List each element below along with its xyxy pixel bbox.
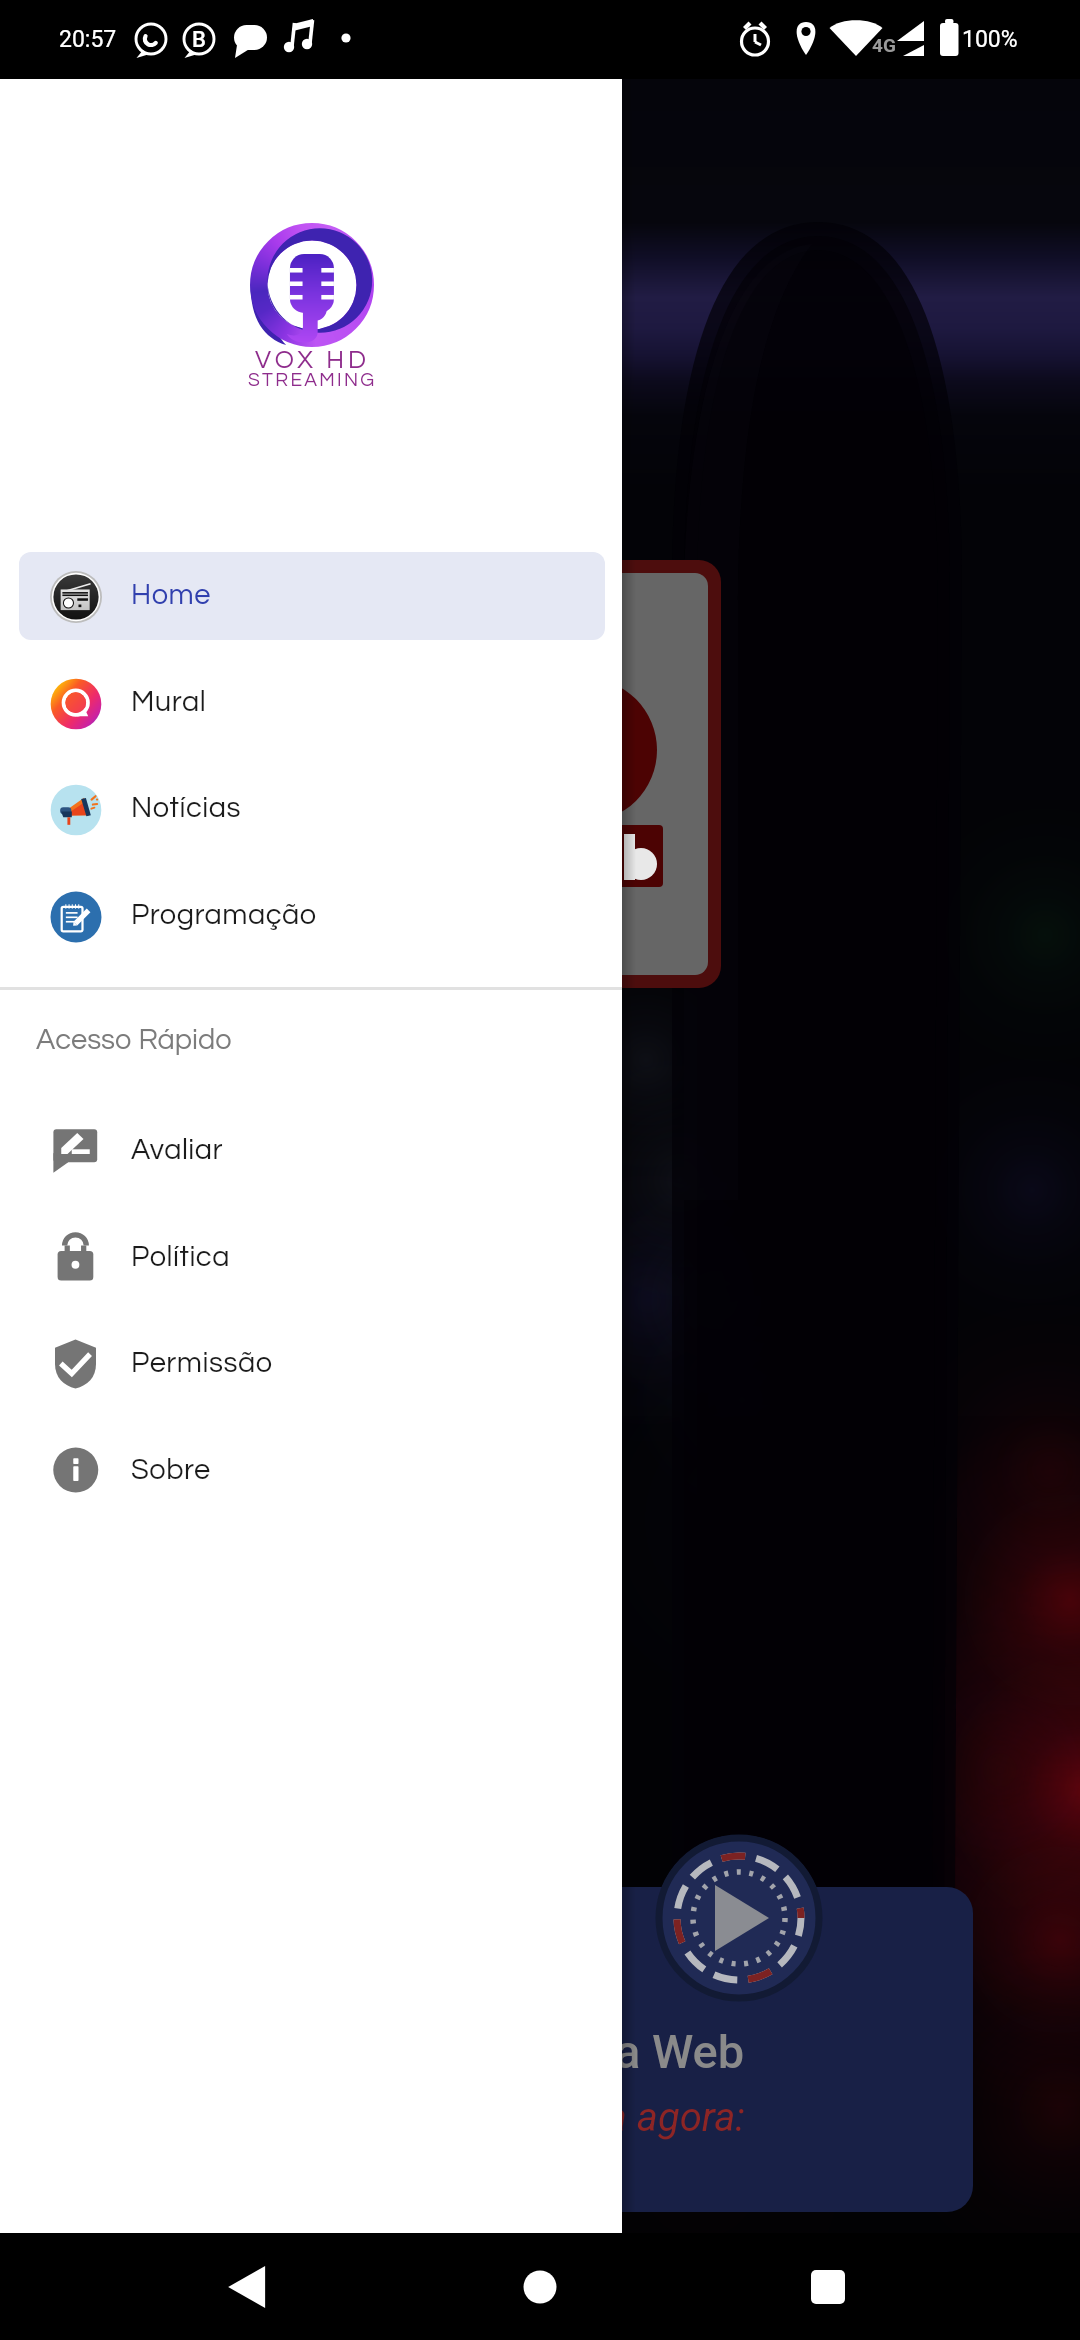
- staticText: Acesso Rápido: [36, 1025, 232, 1055]
- staticText: VOX HD: [255, 347, 370, 373]
- button[interactable]: [19, 1213, 605, 1301]
- button[interactable]: Recent apps: [774, 2233, 882, 2340]
- button[interactable]: [19, 1426, 605, 1514]
- button[interactable]: [19, 1320, 605, 1408]
- staticText: Política: [131, 1242, 230, 1272]
- staticText: Avaliar: [131, 1135, 224, 1165]
- staticText: ouça agora:: [542, 2094, 745, 2141]
- staticText: Sobre: [131, 1455, 211, 1485]
- button[interactable]: [19, 873, 605, 961]
- button[interactable]: [19, 660, 605, 748]
- button[interactable]: [19, 766, 605, 854]
- staticText: Notícias: [131, 793, 241, 823]
- other: Vox HD Streaming: [249, 221, 375, 347]
- staticText: 20:57: [59, 26, 117, 53]
- button[interactable]: Home: [486, 2233, 594, 2340]
- button[interactable]: Back: [196, 2233, 304, 2340]
- staticText: Home: [131, 580, 211, 610]
- staticText: Mural: [131, 687, 207, 717]
- staticText: Permissão: [131, 1348, 273, 1378]
- staticText: Rádio na Web: [457, 2024, 745, 2079]
- staticText: STREAMING: [248, 370, 377, 390]
- staticText: 4G: [872, 34, 896, 56]
- staticText: 100%: [962, 26, 1018, 53]
- staticText: B: [192, 27, 206, 53]
- button[interactable]: [19, 1107, 605, 1195]
- staticText: Programação: [131, 900, 317, 930]
- button[interactable]: [19, 553, 605, 641]
